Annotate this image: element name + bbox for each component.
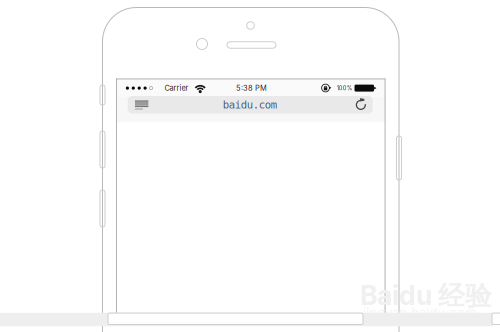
staticText: Baidu 经验 xyxy=(360,279,492,313)
staticText: Carrier xyxy=(164,84,188,93)
staticText: baidu.com xyxy=(223,99,277,111)
staticText: jingyan.baidu.com xyxy=(363,305,477,321)
button[interactable]: baidu.com xyxy=(128,96,373,114)
staticText: 5:38 PM xyxy=(236,84,267,93)
staticText: 100% xyxy=(337,85,352,91)
